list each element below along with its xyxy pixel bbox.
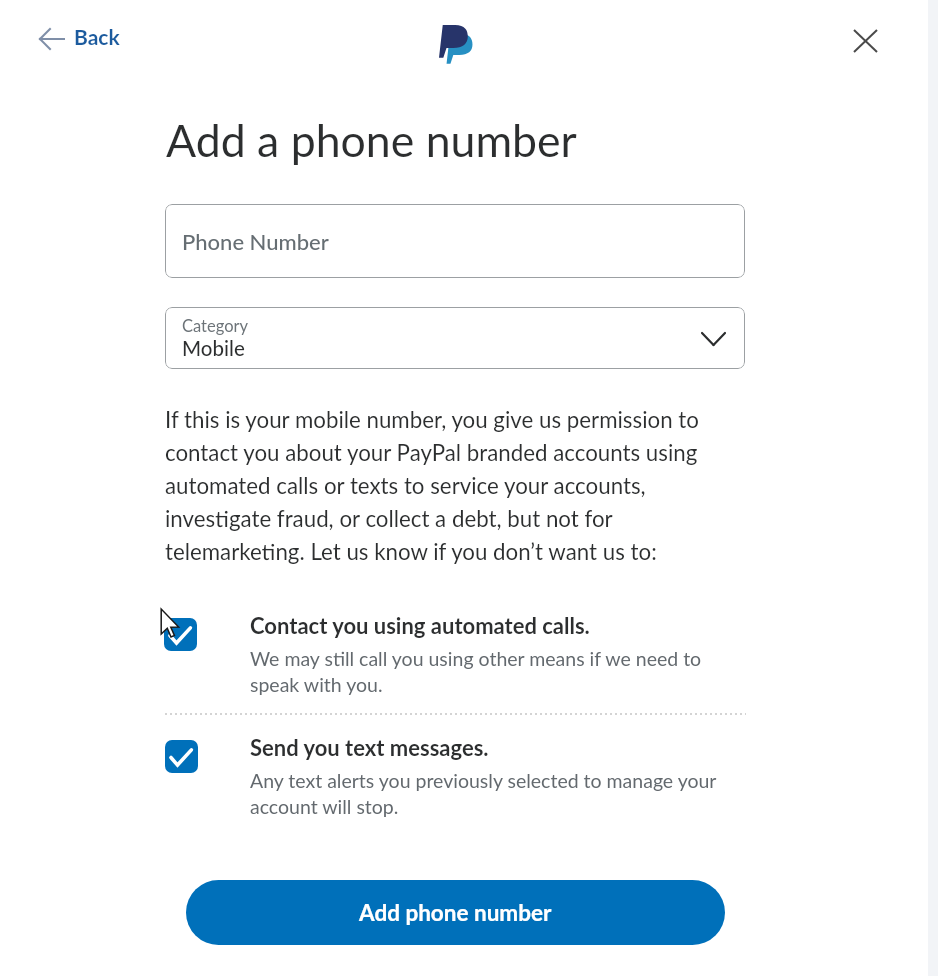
staticText: Add a phone number <box>166 113 577 167</box>
staticText: If this is your mobile number, you give … <box>165 401 725 566</box>
staticText: Mobile <box>182 336 245 361</box>
button[interactable]: Checked <box>165 740 198 773</box>
button[interactable]: Back <box>27 16 132 61</box>
button[interactable]: Checked <box>164 618 197 651</box>
button[interactable]: Add phone number <box>186 880 725 945</box>
button[interactable]: Category <box>165 307 745 369</box>
button[interactable]: Phone Number <box>165 204 745 278</box>
button[interactable]: Close <box>842 18 889 64</box>
staticText: Phone Number <box>182 228 329 254</box>
staticText: Back <box>74 24 120 49</box>
staticText: Any text alerts you previously selected … <box>250 766 730 818</box>
staticText: Category <box>182 316 249 336</box>
staticText: We may still call you using other means … <box>250 644 730 696</box>
staticText: Send you text messages. <box>250 734 489 760</box>
staticText: Contact you using automated calls. <box>250 612 590 638</box>
staticText: Add phone number <box>359 899 552 926</box>
